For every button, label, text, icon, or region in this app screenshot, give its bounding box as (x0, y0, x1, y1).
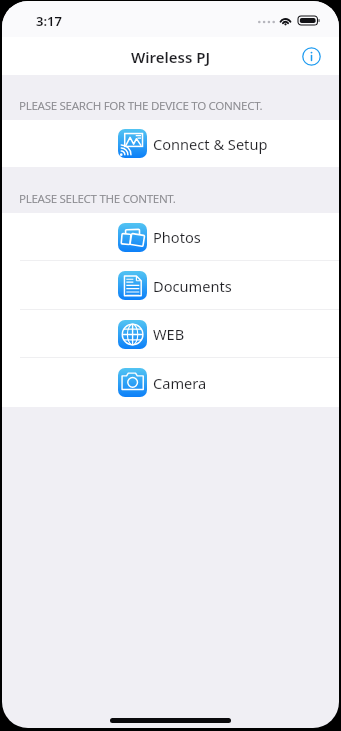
button[interactable]: Photos (2, 213, 339, 261)
staticText: Documents (153, 276, 232, 296)
button[interactable]: Documents (2, 261, 339, 310)
staticText: PLEASE SEARCH FOR THE DEVICE TO CONNECT. (19, 98, 263, 114)
button[interactable]: Connect & Setup (2, 120, 339, 167)
staticText: Wireless PJ (131, 47, 211, 67)
staticText: Connect & Setup (153, 134, 268, 154)
staticText: WEB (153, 324, 185, 344)
button[interactable]: Camera (2, 358, 339, 407)
staticText: PLEASE SELECT THE CONTENT. (19, 191, 176, 207)
button[interactable]: WEB (2, 310, 339, 358)
staticText: Photos (153, 227, 201, 247)
staticText: 3:17 (36, 12, 62, 30)
button[interactable]: Information (297, 42, 325, 70)
staticText: Camera (153, 373, 207, 393)
